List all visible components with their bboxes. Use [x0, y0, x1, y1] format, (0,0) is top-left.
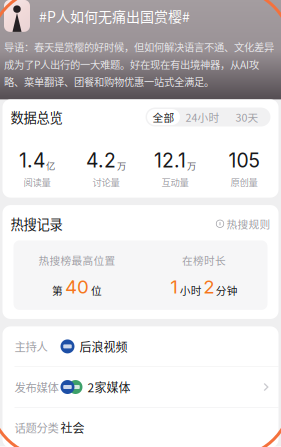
staticText: 互动量 [161, 175, 188, 189]
staticText: 小时 [180, 282, 202, 298]
button[interactable]: 30天 [225, 109, 269, 125]
staticText: 热搜规则 [226, 216, 270, 231]
button[interactable]: 全部 [147, 109, 180, 125]
staticText: 2 [203, 275, 214, 298]
button[interactable]: 热搜规则 [216, 216, 270, 231]
button[interactable]: 发布媒体 [2, 367, 278, 407]
staticText: 4.2 [86, 149, 116, 172]
button[interactable]: 主持人 [2, 326, 278, 366]
button[interactable]: 24小时 [180, 109, 225, 125]
staticText: 1.4 [19, 149, 45, 172]
staticText: 社会 [60, 419, 84, 436]
staticText: 阅读量 [23, 175, 50, 189]
staticText: 后浪视频 [79, 338, 127, 355]
staticText: 主持人 [14, 338, 47, 355]
staticText: 万 [187, 159, 196, 172]
staticText: 话题分类 [14, 419, 58, 436]
staticText: 全部 [152, 109, 174, 125]
staticText: 105 [228, 149, 259, 172]
staticText: 30天 [235, 109, 258, 125]
staticText: 万 [117, 159, 126, 172]
staticText: 热搜榜最高位置 [38, 252, 115, 268]
staticText: 第 [52, 282, 63, 298]
staticText: 2家媒体 [87, 378, 130, 396]
staticText: 在榜时长 [182, 252, 226, 268]
staticText: 原创量 [230, 175, 257, 189]
staticText: 亿 [46, 159, 55, 172]
staticText: 1 [170, 275, 178, 298]
staticText: 40 [65, 275, 89, 298]
staticText: 12.1 [154, 149, 186, 172]
staticText: 讨论量 [92, 175, 119, 189]
staticText: 发布媒体 [14, 379, 58, 395]
staticText: 数据总览 [10, 107, 62, 127]
staticText: 热搜记录 [10, 214, 62, 233]
staticText: 分钟 [216, 282, 238, 298]
staticText: 24小时 [185, 109, 219, 125]
staticText: #P人如何无痛出国赏樱# [39, 6, 190, 26]
staticText: 位 [91, 282, 102, 298]
staticText: 导语：春天是赏樱的好时候，但如何解决语言不通、文化差异成为了P人出行的一大难题。… [4, 39, 274, 89]
